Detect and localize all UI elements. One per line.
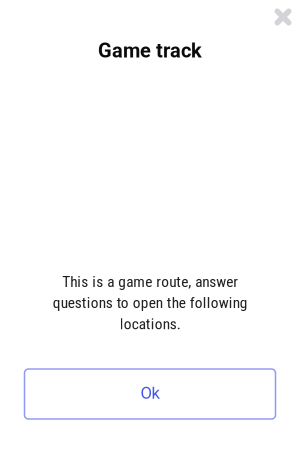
staticText: Ok bbox=[140, 383, 159, 403]
staticText: Game track bbox=[98, 39, 202, 62]
button[interactable]: Ok bbox=[24, 369, 275, 419]
staticText: This is a game route, answer questions t… bbox=[52, 273, 247, 333]
button[interactable]: Close bbox=[267, 1, 299, 33]
